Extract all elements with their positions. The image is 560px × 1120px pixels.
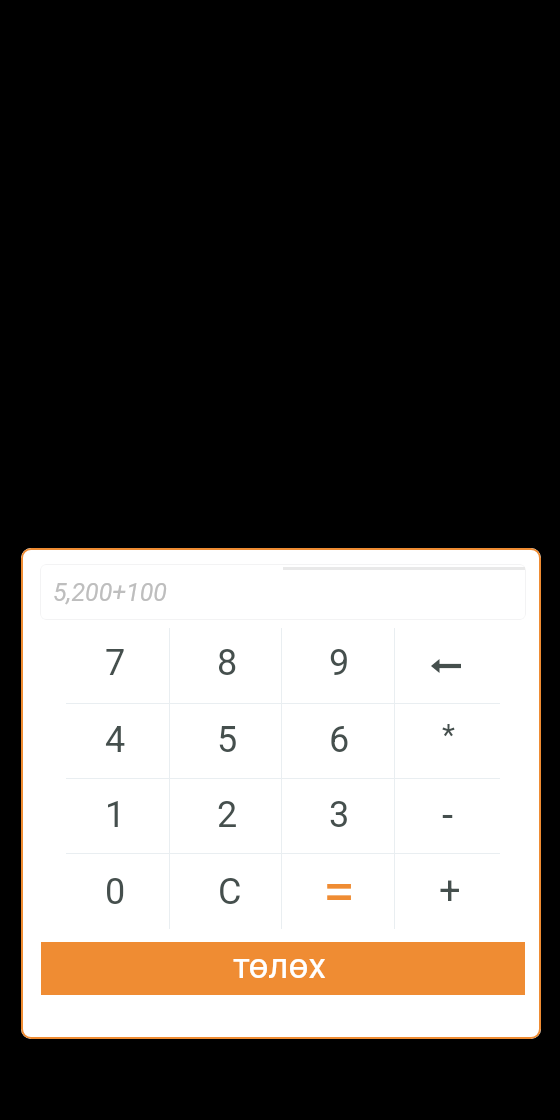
button[interactable]: 8 (171, 628, 283, 703)
button[interactable]: 2 (171, 778, 283, 854)
staticText: 6 (329, 719, 350, 761)
button[interactable]: Backspace (395, 628, 507, 703)
button[interactable]: 4 (59, 703, 171, 778)
button[interactable]: төлөх (41, 942, 525, 995)
button[interactable]: 6 (283, 703, 395, 778)
button[interactable]: Plus (395, 854, 507, 929)
button[interactable]: 7 (59, 628, 171, 703)
staticText: C (218, 871, 242, 913)
button[interactable]: 3 (283, 778, 395, 854)
staticText: + (439, 869, 461, 914)
staticText: 5,200+100 (53, 578, 167, 607)
button[interactable]: Equals (283, 854, 395, 929)
staticText: = (323, 857, 355, 925)
staticText: 8 (217, 642, 238, 684)
staticText: 9 (329, 642, 350, 684)
staticText: 3 (329, 794, 350, 836)
button[interactable]: 1 (59, 778, 171, 854)
staticText: * (442, 717, 455, 752)
button[interactable]: 5,200+100 (40, 564, 526, 620)
staticText: - (442, 792, 454, 839)
staticText: 0 (105, 871, 126, 913)
button[interactable]: 5 (171, 703, 283, 778)
staticText: 1 (105, 794, 126, 836)
staticText: 2 (217, 794, 238, 836)
button[interactable]: Clear (171, 854, 283, 929)
button[interactable]: Multiply (395, 703, 507, 778)
staticText: төлөх (233, 946, 326, 987)
button[interactable]: 0 (59, 854, 171, 929)
staticText: 4 (105, 719, 126, 761)
staticText: 7 (105, 642, 126, 684)
staticText: 5 (217, 719, 238, 761)
button[interactable]: Minus (395, 778, 507, 854)
button[interactable]: 9 (283, 628, 395, 703)
